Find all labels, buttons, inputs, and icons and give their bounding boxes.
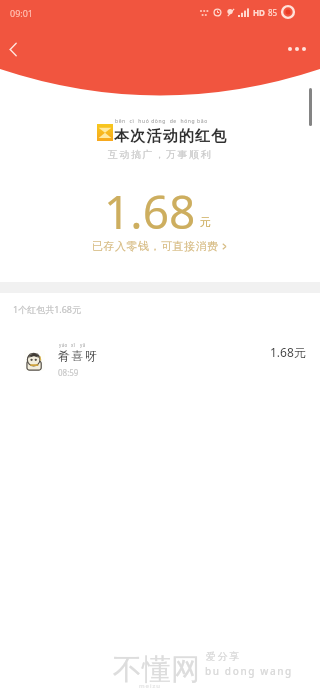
staticText: HD — [253, 7, 265, 18]
button[interactable]: 已存入零钱，可直接消费 — [92, 239, 228, 253]
staticText: 互动搞广，万事顺利 — [0, 148, 320, 161]
staticText: 1.68元 — [270, 344, 306, 360]
staticText: 肴喜呀 — [58, 348, 99, 363]
staticText: 爱分享 — [206, 650, 241, 663]
staticText: meizu — [139, 682, 162, 690]
staticText: 本次活动的红包 — [114, 127, 228, 146]
staticText: 不懂网 — [113, 651, 200, 688]
button[interactable]: More options — [282, 34, 312, 64]
staticText: běn cì huó dòng de hóng bāo — [115, 118, 208, 125]
button[interactable]: yáo xǐ yā — [0, 340, 320, 386]
staticText: 08:59 — [58, 367, 79, 378]
staticText: 元 — [200, 215, 211, 229]
staticText: 09:01 — [10, 7, 34, 19]
staticText: 1个红包共1.68元 — [13, 303, 82, 315]
staticText: 85 — [268, 7, 278, 18]
staticText: 已存入零钱，可直接消费 — [92, 239, 219, 253]
button[interactable]: Back — [0, 34, 28, 64]
staticText: 1.68 — [104, 180, 196, 243]
staticText: bu dong wang — [205, 664, 293, 678]
staticText: yáo xǐ yā — [59, 342, 86, 348]
